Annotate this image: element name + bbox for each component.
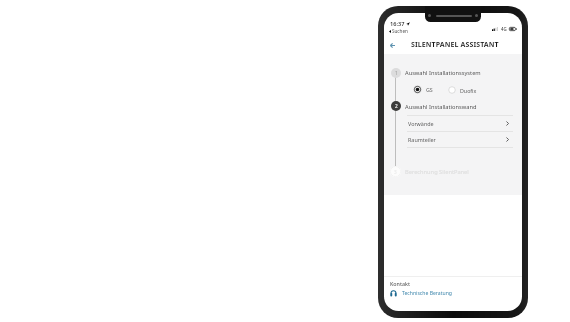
staticText: Berechnung SilentPanel bbox=[405, 168, 469, 176]
staticText: Raumteiler bbox=[408, 136, 436, 143]
staticText: 2 bbox=[395, 103, 398, 109]
staticText: Auswahl Installationswand bbox=[405, 103, 477, 111]
button[interactable]: Vorwände bbox=[384, 116, 522, 131]
staticText: 3 bbox=[394, 169, 397, 175]
staticText: Kontakt bbox=[390, 280, 410, 287]
staticText: GS bbox=[426, 86, 433, 93]
button[interactable]: Duofix bbox=[448, 86, 477, 94]
button[interactable]: GS bbox=[413, 85, 433, 94]
button[interactable]: Technische Beratung bbox=[390, 290, 452, 297]
staticText: Suchen bbox=[392, 28, 408, 34]
staticText: SILENTPANEL ASSISTANT bbox=[411, 40, 499, 50]
staticText: 16:37 bbox=[390, 20, 405, 28]
staticText: Auswahl Installationssystem bbox=[405, 69, 481, 77]
staticText: 1 bbox=[395, 70, 398, 76]
staticText: Technische Beratung bbox=[402, 290, 452, 297]
staticText: Duofix bbox=[460, 87, 477, 94]
staticText: Vorwände bbox=[408, 120, 434, 127]
button[interactable]: Raumteiler bbox=[384, 132, 522, 147]
staticText: 4G bbox=[501, 26, 507, 32]
button[interactable]: Back bbox=[386, 39, 399, 52]
